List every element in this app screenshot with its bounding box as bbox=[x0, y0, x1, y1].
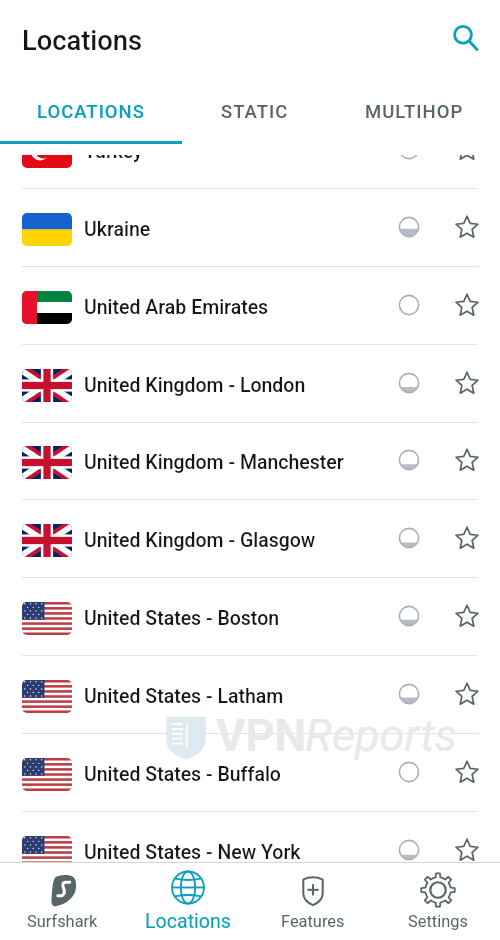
staticText: United Kingdom - Glasgow bbox=[84, 529, 316, 552]
staticText: Ukraine bbox=[84, 218, 151, 241]
button[interactable]: Add to favorites bbox=[452, 679, 482, 709]
staticText: VPN bbox=[216, 709, 307, 762]
button[interactable]: Add to favorites bbox=[452, 757, 482, 787]
staticText: United States - Buffalo bbox=[84, 763, 281, 786]
button[interactable]: United States - New York bbox=[0, 812, 500, 862]
button[interactable]: Add to favorites bbox=[452, 523, 482, 553]
button[interactable]: Add to favorites bbox=[452, 290, 482, 320]
button[interactable]: Add to favorites bbox=[452, 155, 482, 164]
staticText: LOCATIONS bbox=[37, 101, 145, 123]
button[interactable]: Add to favorites bbox=[452, 368, 482, 398]
button[interactable]: Add to favorites bbox=[452, 601, 482, 631]
button[interactable]: United States - Latham bbox=[0, 656, 500, 734]
button[interactable]: Turkey bbox=[0, 155, 500, 189]
button[interactable]: United States - Boston bbox=[0, 578, 500, 656]
button[interactable]: United Kingdom - London bbox=[0, 345, 500, 423]
button[interactable]: Settings bbox=[375, 863, 500, 940]
staticText: United States - Boston bbox=[84, 607, 280, 630]
button[interactable]: Add to favorites bbox=[452, 445, 482, 475]
button[interactable]: Add to favorites bbox=[452, 212, 482, 242]
staticText: United States - New York bbox=[84, 841, 301, 862]
button[interactable]: MULTIHOP bbox=[328, 82, 500, 142]
button[interactable]: United States - Buffalo bbox=[0, 734, 500, 812]
button[interactable]: LOCATIONS bbox=[0, 82, 182, 142]
staticText: United Arab Emirates bbox=[84, 296, 269, 319]
button[interactable]: Ukraine bbox=[0, 189, 500, 267]
staticText: Features bbox=[281, 912, 345, 931]
staticText: Locations bbox=[145, 910, 231, 933]
button[interactable]: Add to favorites bbox=[452, 835, 482, 862]
staticText: Turkey bbox=[84, 155, 143, 163]
button[interactable]: United Kingdom - Manchester bbox=[0, 422, 500, 500]
button[interactable]: Search bbox=[440, 14, 486, 60]
button[interactable]: STATIC bbox=[182, 82, 328, 142]
button[interactable]: Surfshark bbox=[0, 863, 125, 940]
button[interactable]: United Arab Emirates bbox=[0, 267, 500, 345]
staticText: STATIC bbox=[221, 101, 289, 123]
button[interactable]: United Kingdom - Glasgow bbox=[0, 500, 500, 578]
staticText: United Kingdom - London bbox=[84, 374, 306, 397]
staticText: Locations bbox=[22, 25, 142, 57]
staticText: United States - Latham bbox=[84, 685, 284, 708]
staticText: Settings bbox=[408, 912, 468, 931]
staticText: Surfshark bbox=[27, 912, 98, 931]
button[interactable]: Locations bbox=[125, 863, 250, 940]
staticText: United Kingdom - Manchester bbox=[84, 451, 344, 474]
staticText: MULTIHOP bbox=[365, 101, 464, 123]
button[interactable]: Features bbox=[250, 863, 375, 940]
staticText: Reports bbox=[305, 709, 458, 762]
